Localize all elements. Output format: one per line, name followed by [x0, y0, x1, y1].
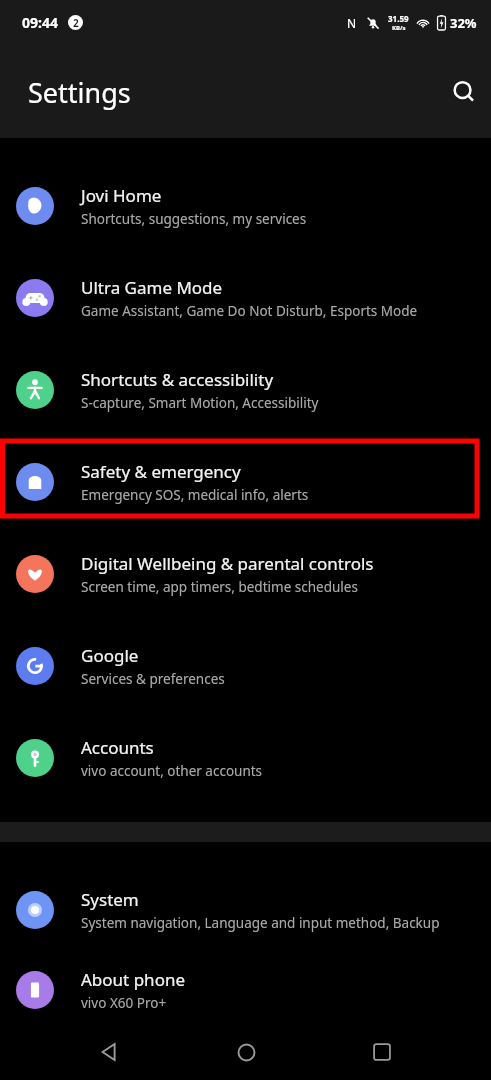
button[interactable]: Home [218, 1024, 274, 1080]
button[interactable]: About phone [0, 956, 491, 1024]
staticText: Services & preferences [81, 670, 225, 688]
button[interactable]: Digital Wellbeing & parental controls [0, 528, 491, 620]
button[interactable]: Shortcuts & accessibility [0, 344, 491, 436]
staticText: KB/s [392, 24, 406, 32]
staticText: Shortcuts & accessibility [81, 368, 274, 391]
staticText: About phone [81, 968, 186, 991]
staticText: N [347, 15, 357, 31]
button[interactable]: Back [81, 1024, 137, 1080]
staticText: 09:44 [22, 13, 58, 32]
staticText: Shortcuts, suggestions, my services [81, 210, 307, 228]
staticText: Ultra Game Mode [81, 276, 223, 299]
button[interactable]: Ultra Game Mode [0, 252, 491, 344]
staticText: Jovi Home [81, 184, 162, 207]
staticText: Settings [28, 74, 131, 111]
button[interactable]: Search [440, 68, 488, 116]
staticText: System [81, 888, 139, 911]
button[interactable]: Jovi Home [0, 160, 491, 252]
button[interactable]: Safety & emergency [0, 436, 491, 528]
staticText: 32% [450, 14, 477, 32]
staticText: Game Assistant, Game Do Not Disturb, Esp… [81, 302, 418, 320]
button[interactable]: Accounts [0, 712, 491, 804]
staticText: Emergency SOS, medical info, alerts [81, 486, 309, 504]
staticText: Google [81, 644, 139, 667]
staticText: Screen time, app timers, bedtime schedul… [81, 578, 358, 596]
staticText: vivo account, other accounts [81, 762, 263, 780]
staticText: Safety & emergency [81, 460, 241, 483]
staticText: Digital Wellbeing & parental controls [81, 552, 374, 575]
staticText: S-capture, Smart Motion, Accessibility [81, 394, 319, 412]
button[interactable]: Google [0, 620, 491, 712]
button[interactable]: Recent apps [354, 1024, 410, 1080]
staticText: System navigation, Language and input me… [81, 914, 440, 932]
staticText: 2 [73, 16, 79, 30]
staticText: 31.59 [388, 13, 409, 24]
staticText: Accounts [81, 736, 154, 759]
button[interactable]: System [0, 864, 491, 956]
staticText: vivo X60 Pro+ [81, 994, 167, 1012]
